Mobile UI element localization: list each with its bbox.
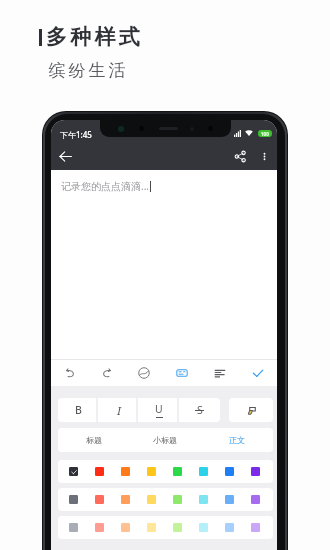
staticText: S [197,403,203,417]
button[interactable] [147,467,156,476]
button[interactable]: 正文 [201,428,273,452]
button[interactable] [69,495,78,504]
button[interactable] [225,495,234,504]
button[interactable]: Text format [163,360,201,386]
button[interactable] [95,495,104,504]
button[interactable] [95,523,104,532]
button[interactable] [225,523,234,532]
button[interactable] [95,467,104,476]
button[interactable] [173,495,182,504]
button[interactable] [173,523,182,532]
button[interactable] [199,523,208,532]
button[interactable] [229,398,273,422]
button[interactable] [199,467,208,476]
button[interactable] [251,523,260,532]
button[interactable] [199,495,208,504]
button[interactable]: Alignment [201,360,239,386]
button[interactable]: Redo [88,360,125,386]
button[interactable]: B [58,398,98,422]
staticText: 记录您的点点滴滴... [61,179,150,193]
button[interactable]: More options [252,144,276,168]
button[interactable]: 小标题 [129,428,201,452]
staticText: B [75,403,82,417]
button[interactable] [121,467,130,476]
button[interactable]: I [98,398,138,422]
button[interactable]: U [138,398,179,422]
staticText: 下午1:45 [60,129,92,140]
button[interactable] [147,523,156,532]
staticText: 100 [261,131,269,137]
button[interactable]: Insert image [125,360,163,386]
staticText: 缤纷生活 [47,60,127,81]
button[interactable] [69,467,78,476]
button[interactable]: Done [239,360,277,386]
staticText: 正文 [229,435,245,445]
button[interactable]: Undo [51,360,88,386]
button[interactable] [121,523,130,532]
staticText: U [155,402,163,416]
button[interactable]: Back [53,144,77,168]
staticText: I [117,403,122,418]
button[interactable] [121,495,130,504]
button[interactable] [225,467,234,476]
button[interactable] [147,495,156,504]
staticText: 标题 [86,435,102,445]
button[interactable] [251,467,260,476]
button[interactable]: S [179,398,220,422]
button[interactable]: Share [228,144,252,168]
staticText: 多种样式 [46,24,143,50]
button[interactable] [173,467,182,476]
staticText: 小标题 [153,435,177,445]
button[interactable] [69,523,78,532]
button[interactable] [251,495,260,504]
button[interactable]: 标题 [58,428,129,452]
